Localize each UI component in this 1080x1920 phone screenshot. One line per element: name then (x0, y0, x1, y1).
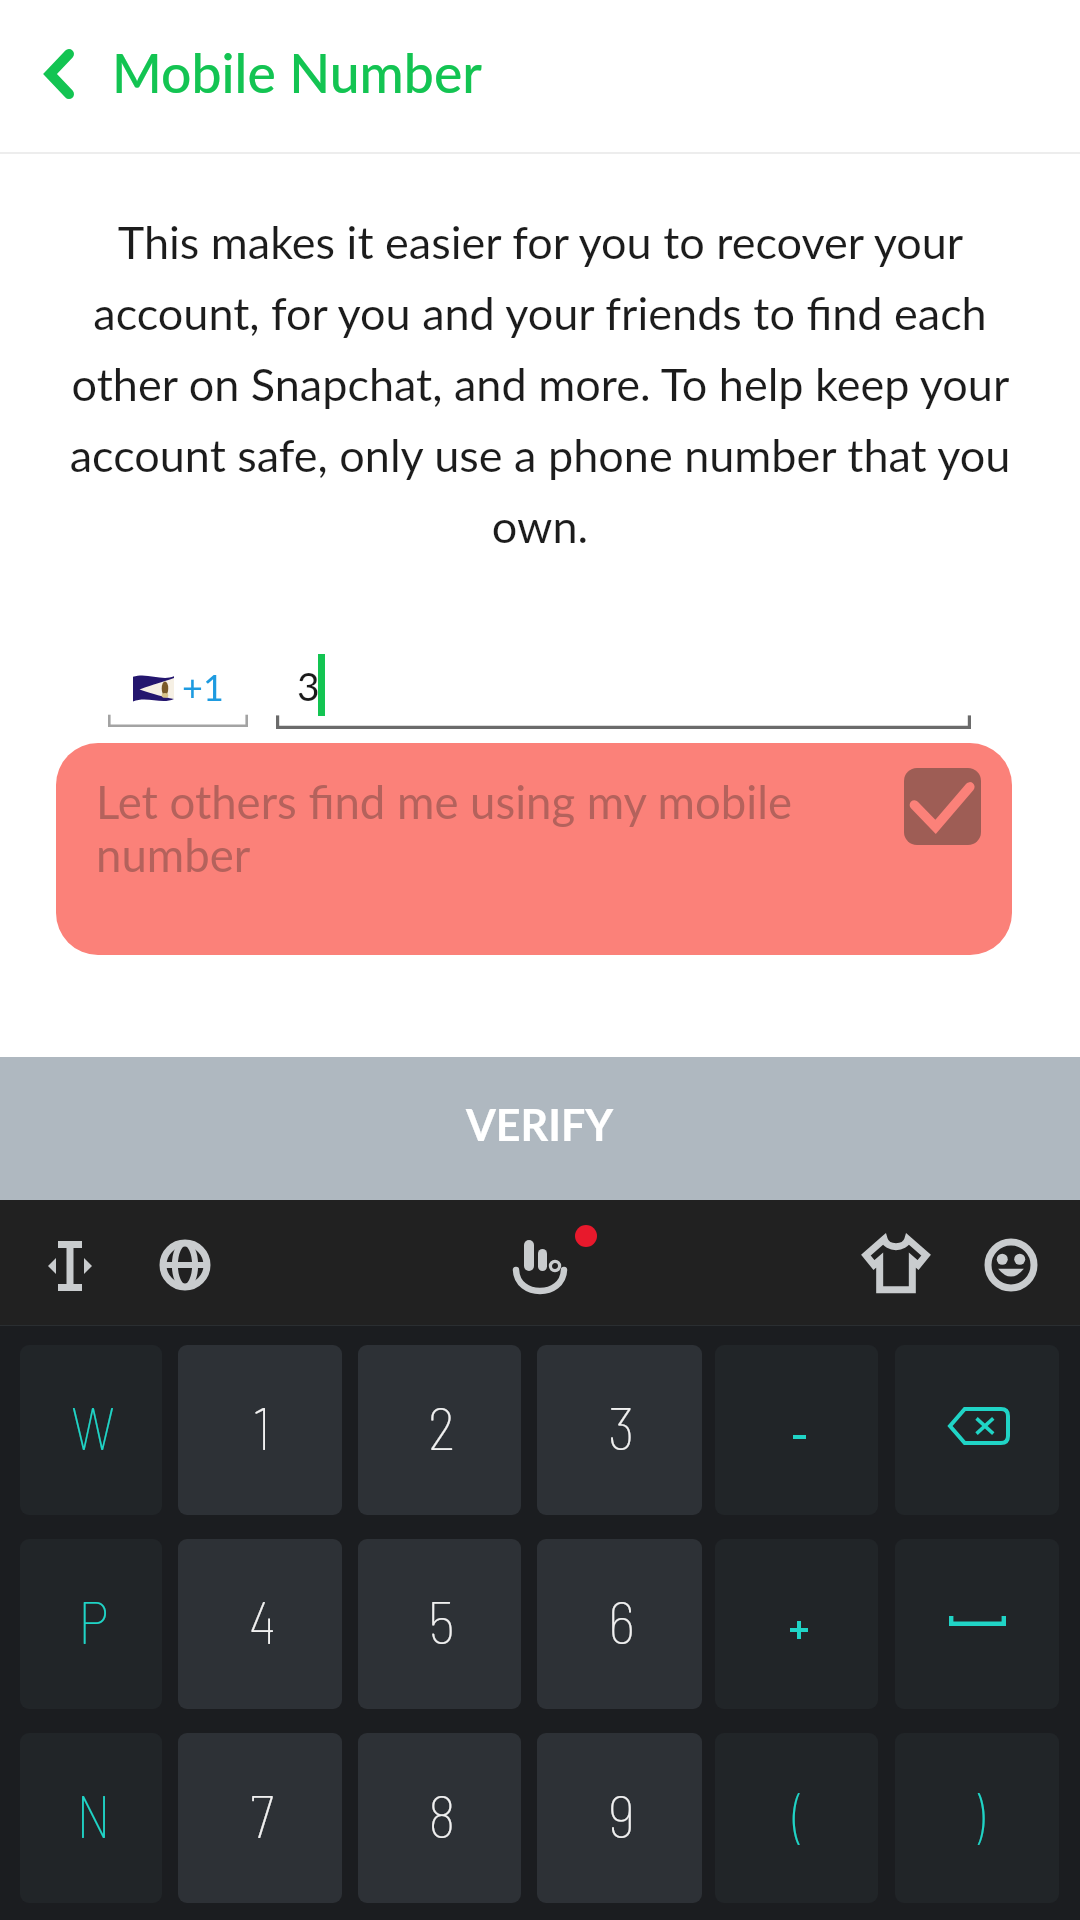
button[interactable] (715, 1539, 878, 1709)
button[interactable] (715, 1345, 878, 1515)
button[interactable]: 4 (178, 1539, 342, 1709)
staticText: ( (793, 1778, 805, 1850)
staticText: Let others find me using my mobile numbe… (96, 774, 856, 882)
button[interactable]: W (20, 1345, 162, 1515)
button[interactable]: VERIFY (0, 1057, 1080, 1200)
button[interactable]: Back (20, 35, 98, 113)
button[interactable]: P (20, 1539, 162, 1709)
staticText: +1 (182, 665, 224, 708)
button[interactable]: ) (895, 1733, 1059, 1903)
button[interactable]: Space (895, 1539, 1059, 1709)
button[interactable]: 3 (537, 1345, 702, 1515)
staticText: P (78, 1584, 109, 1656)
staticText: 7 (250, 1778, 275, 1850)
button[interactable]: Let others find me using my mobile numbe… (56, 743, 1012, 955)
staticText: Mobile Number (112, 40, 482, 104)
staticText: 9 (608, 1778, 635, 1850)
button[interactable]: Themes (851, 1219, 941, 1309)
staticText: VERIFY (466, 1099, 614, 1151)
staticText: 5 (428, 1584, 455, 1656)
button[interactable]: Emoji (971, 1225, 1051, 1305)
button[interactable]: 1 (178, 1345, 342, 1515)
button[interactable]: Backspace (895, 1345, 1059, 1515)
button[interactable]: N (20, 1733, 162, 1903)
button[interactable]: 6 (537, 1539, 702, 1709)
button[interactable]: Cursor control (32, 1228, 108, 1304)
staticText: N (76, 1778, 111, 1850)
staticText: 2 (428, 1390, 456, 1462)
staticText: This makes it easier for you to recover … (58, 215, 1022, 553)
staticText: ) (973, 1778, 985, 1850)
button[interactable]: Gestures (492, 1218, 588, 1314)
button[interactable]: ( (715, 1733, 878, 1903)
other: Backspace (948, 1407, 1010, 1445)
staticText: 8 (428, 1778, 456, 1850)
button[interactable]: 2 (358, 1345, 521, 1515)
button[interactable]: 5 (358, 1539, 521, 1709)
button[interactable]: 8 (358, 1733, 521, 1903)
staticText: 3 (297, 663, 320, 710)
staticText: 3 (608, 1390, 635, 1462)
staticText: 4 (249, 1584, 276, 1656)
staticText: 6 (608, 1584, 635, 1656)
staticText: 1 (253, 1390, 271, 1462)
other: Space (949, 1616, 1006, 1626)
button[interactable]: Language (147, 1227, 223, 1303)
button[interactable]: 9 (537, 1733, 702, 1903)
button[interactable]: 7 (178, 1733, 342, 1903)
staticText: W (71, 1390, 115, 1462)
